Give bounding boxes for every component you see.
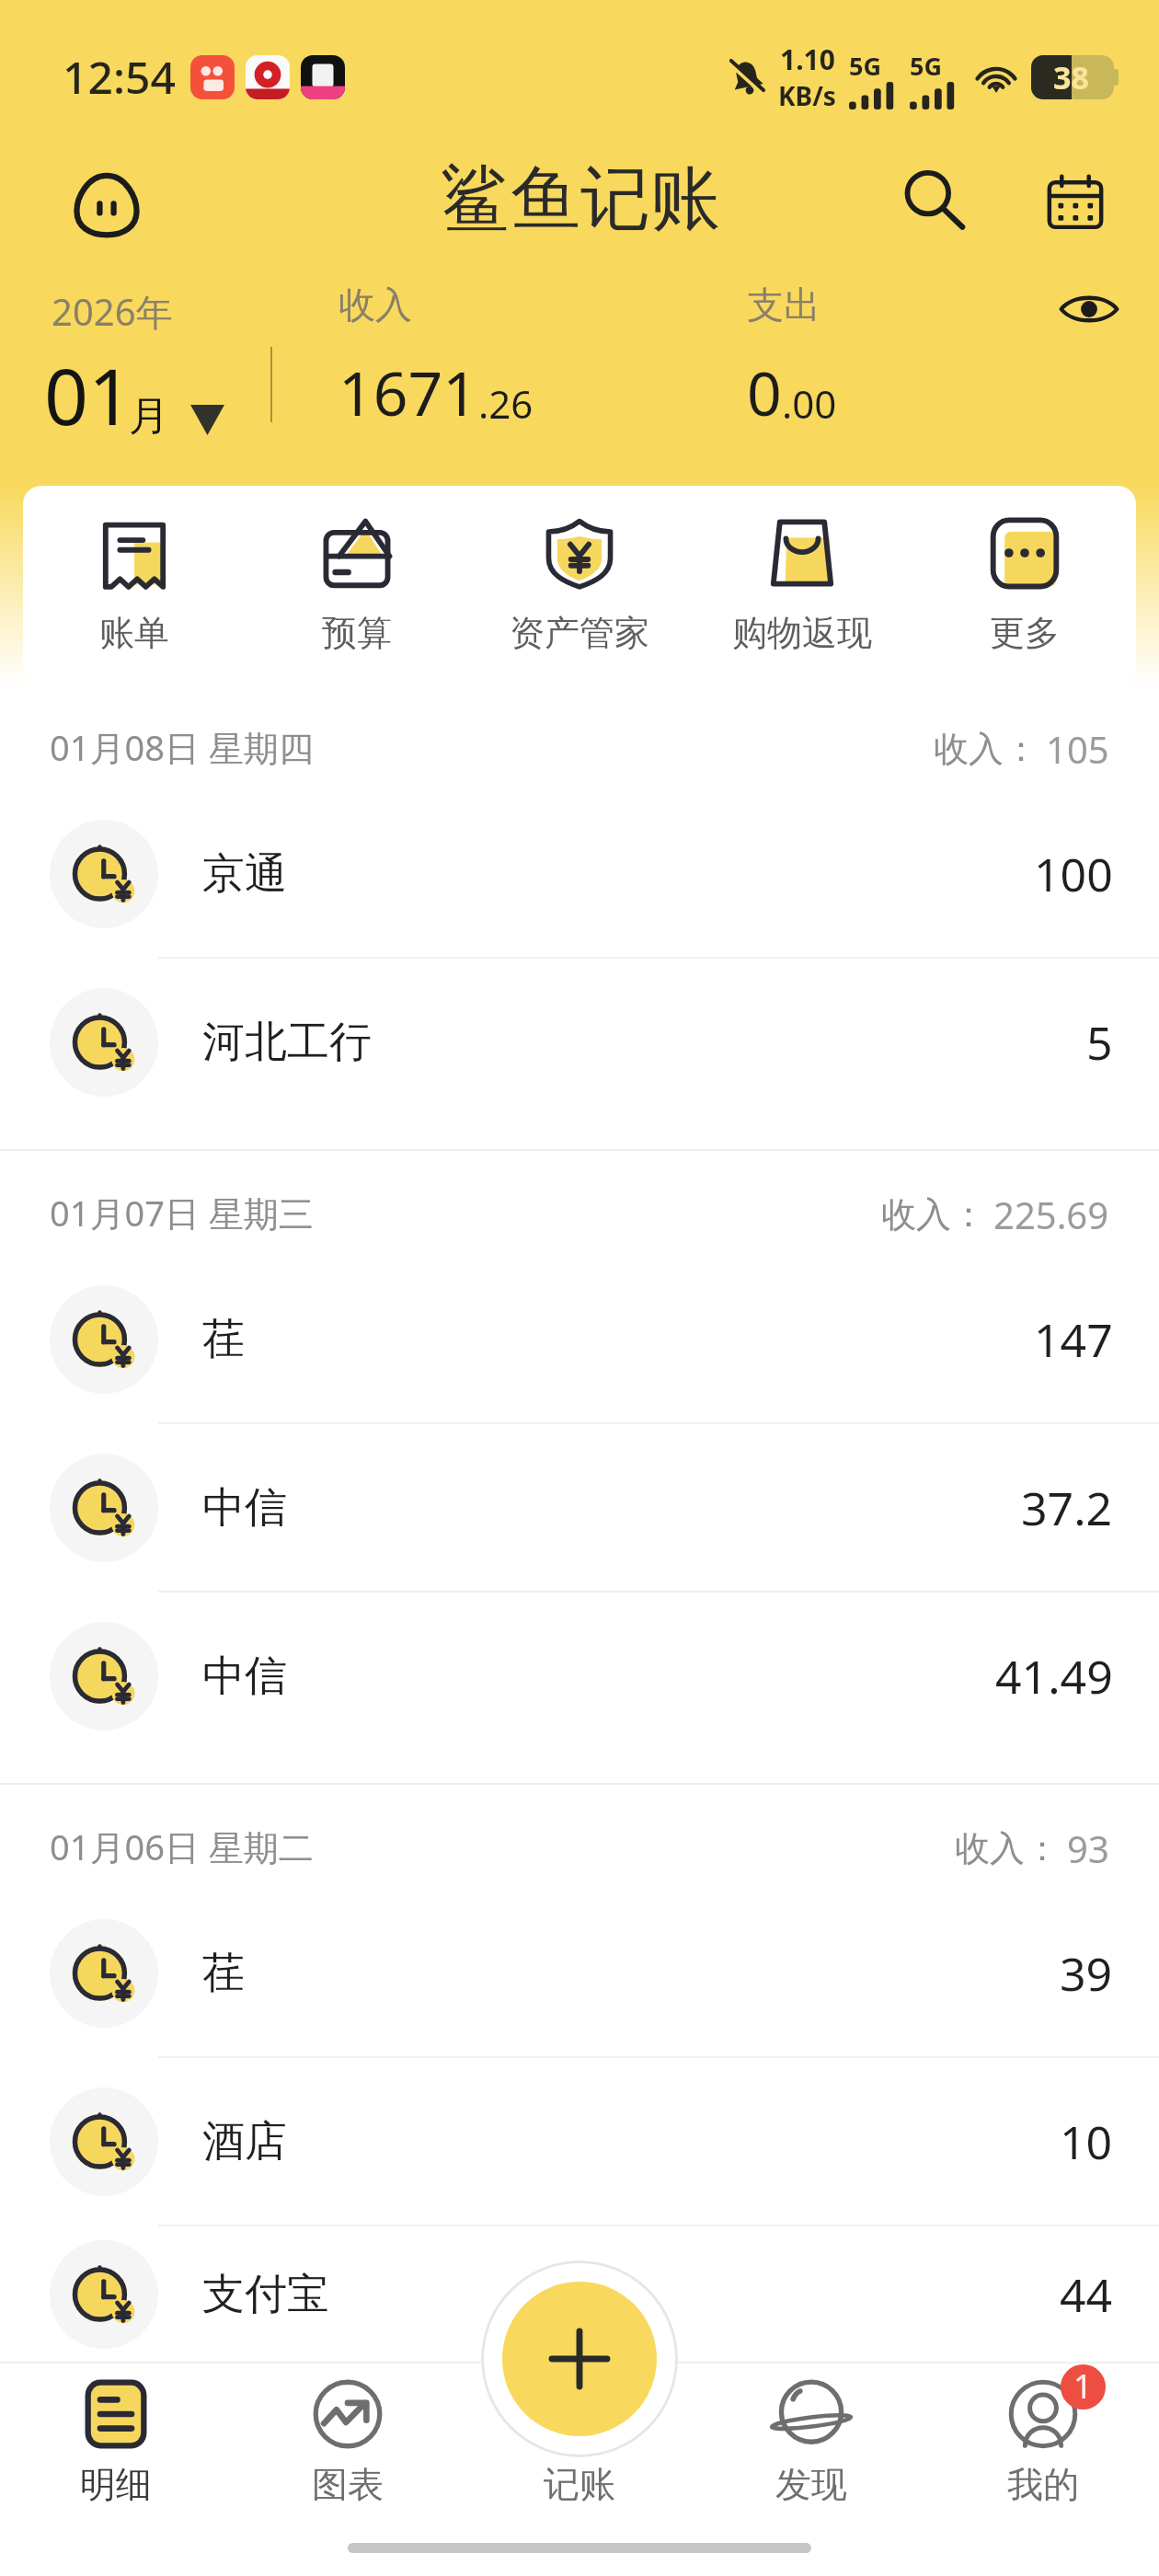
button[interactable]: Toggle amount visibility xyxy=(1056,276,1122,342)
staticText: 44 xyxy=(1060,2263,1113,2326)
staticText: 明细 xyxy=(80,2462,152,2507)
button[interactable]: Add record xyxy=(502,2282,657,2436)
staticText: 93 xyxy=(1067,1823,1109,1873)
staticText: 荏 xyxy=(202,1313,245,1366)
staticText: .00 xyxy=(782,377,837,430)
staticText: 中信 xyxy=(202,1650,287,1703)
staticText: 41.49 xyxy=(995,1645,1113,1708)
button[interactable]: Profile xyxy=(61,153,153,245)
staticText: 39 xyxy=(1060,1942,1113,2005)
staticText: 收入： xyxy=(955,1826,1060,1870)
staticText: 发现 xyxy=(775,2462,847,2507)
staticText: 0 xyxy=(747,351,782,433)
button[interactable]: 京通 xyxy=(0,790,1159,957)
staticText: .26 xyxy=(478,377,534,430)
staticText: 荏 xyxy=(202,1947,245,2000)
staticText: 01 xyxy=(44,342,133,447)
button[interactable]: 荏 xyxy=(0,1890,1159,2056)
staticText: 1671 xyxy=(339,351,478,433)
staticText: 01月08日 星期四 xyxy=(50,723,314,771)
button[interactable]: 河北工行 xyxy=(0,959,1159,1125)
staticText: 100 xyxy=(1034,843,1113,905)
staticText: 收入： xyxy=(881,1192,986,1236)
button[interactable]: 预算 xyxy=(270,515,444,655)
staticText: 5G xyxy=(849,49,881,83)
button[interactable]: 记账 xyxy=(464,2363,695,2525)
staticText: 京通 xyxy=(202,847,287,901)
staticText: 1.10 xyxy=(780,40,835,78)
staticText: 酒店 xyxy=(202,2115,287,2168)
staticText: 5G xyxy=(910,49,942,83)
staticText: 01月07日 星期三 xyxy=(50,1189,314,1236)
staticText: 38 xyxy=(1053,56,1089,98)
staticText: 中信 xyxy=(202,1481,287,1535)
button[interactable]: Calendar xyxy=(1032,155,1120,243)
staticText: 10 xyxy=(1060,2110,1113,2173)
button[interactable]: 图表 xyxy=(232,2363,464,2525)
button[interactable]: 中信 xyxy=(0,1593,1159,1759)
button[interactable]: 账单 xyxy=(47,515,222,655)
staticText: 支出 xyxy=(747,282,820,328)
button[interactable]: 更多 xyxy=(937,515,1112,655)
staticText: 我的 xyxy=(1007,2462,1079,2507)
staticText: 5 xyxy=(1086,1011,1113,1074)
button[interactable]: Search xyxy=(903,155,992,243)
staticText: 1 xyxy=(1073,2364,1093,2409)
staticText: 月 xyxy=(129,391,169,442)
button[interactable]: 酒店 xyxy=(0,2058,1159,2225)
staticText: 收入 xyxy=(339,282,412,328)
button[interactable]: 1 xyxy=(927,2363,1159,2525)
staticText: 记账 xyxy=(544,2462,615,2507)
button[interactable]: 明细 xyxy=(0,2363,232,2525)
staticText: 购物返现 xyxy=(732,611,872,655)
staticText: 2026年 xyxy=(52,286,173,337)
staticText: 更多 xyxy=(990,611,1060,655)
button[interactable]: 资产管家 xyxy=(492,515,667,655)
staticText: 预算 xyxy=(322,611,392,655)
button[interactable]: 中信 xyxy=(0,1424,1159,1591)
staticText: 收入： xyxy=(934,727,1039,771)
staticText: 01月06日 星期二 xyxy=(50,1823,314,1870)
button[interactable]: 购物返现 xyxy=(715,515,889,655)
staticText: 河北工行 xyxy=(202,1016,372,1069)
staticText: 鲨鱼记账 xyxy=(441,155,720,244)
staticText: 12:54 xyxy=(63,47,176,107)
staticText: 资产管家 xyxy=(510,611,649,655)
staticText: 147 xyxy=(1034,1308,1113,1371)
button[interactable]: 发现 xyxy=(695,2363,927,2525)
staticText: 支付宝 xyxy=(202,2268,329,2321)
staticText: 账单 xyxy=(99,611,169,655)
staticText: 105 xyxy=(1046,724,1109,774)
staticText: 225.69 xyxy=(993,1190,1109,1239)
button[interactable]: 荏 xyxy=(0,1256,1159,1422)
staticText: 37.2 xyxy=(1021,1477,1113,1539)
button[interactable]: 支付宝 xyxy=(0,2226,1159,2362)
staticText: 图表 xyxy=(312,2462,384,2507)
staticText: KB/s xyxy=(778,78,836,113)
